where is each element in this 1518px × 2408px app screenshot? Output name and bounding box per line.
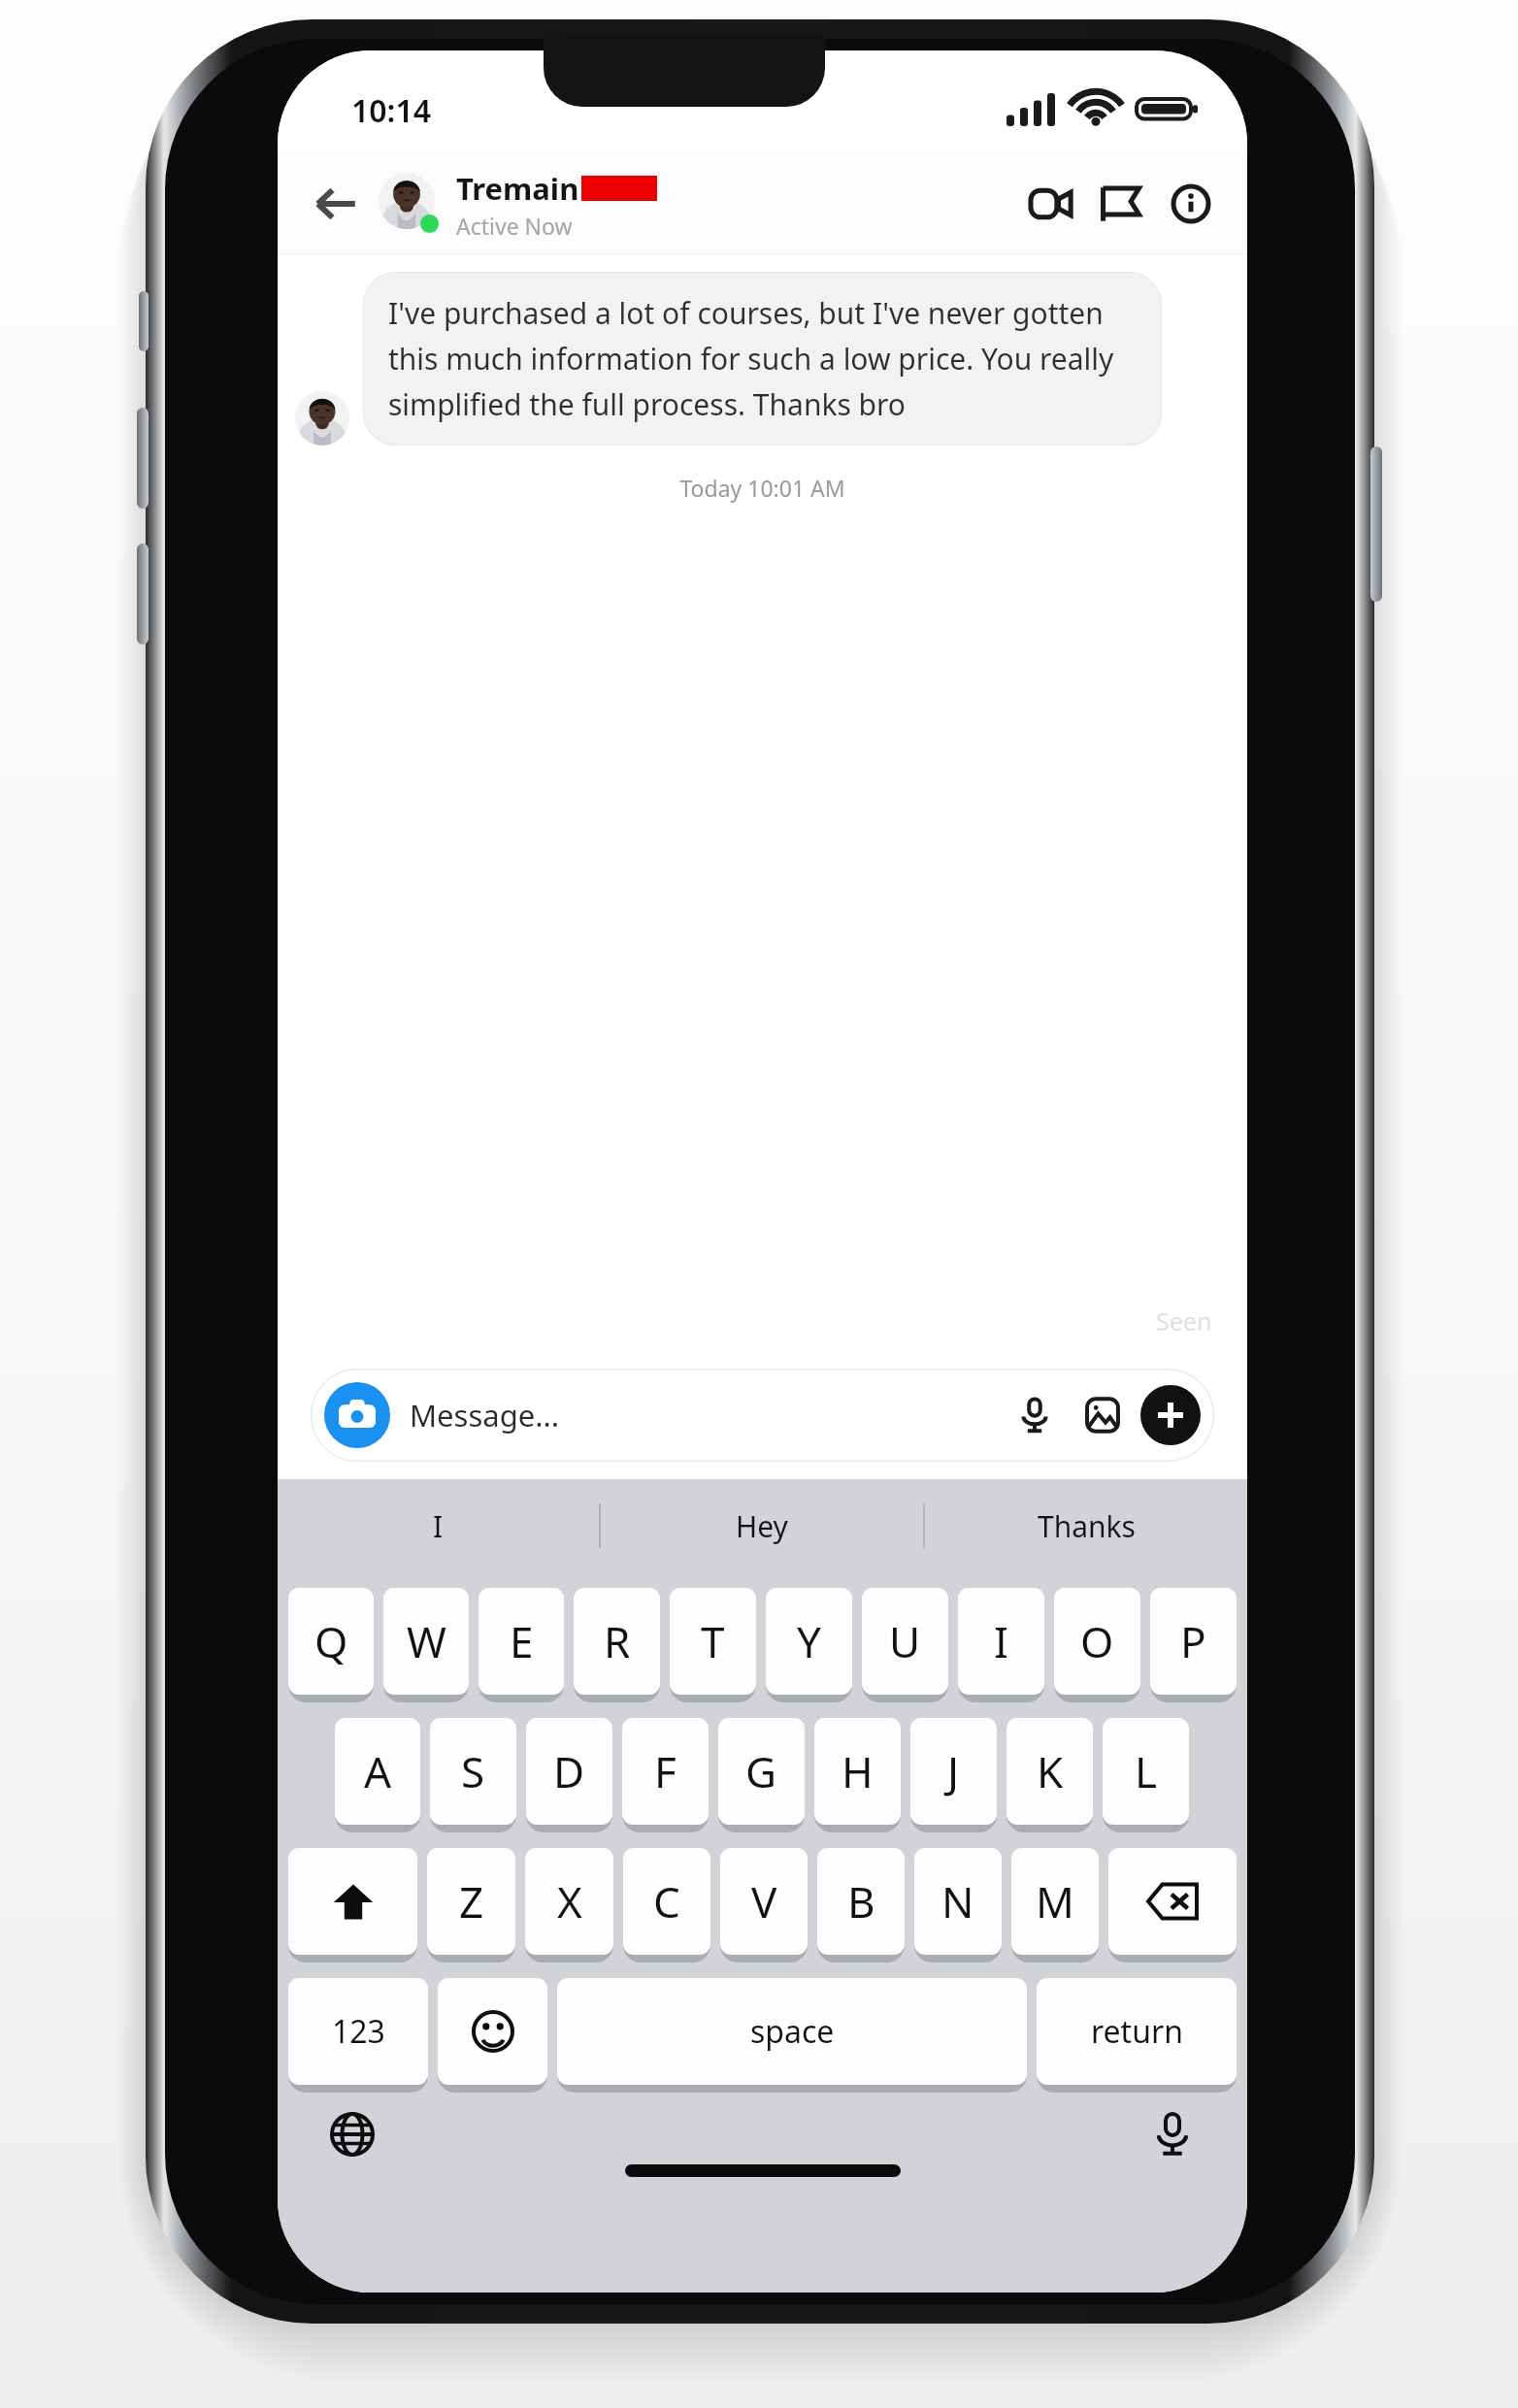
button[interactable]: Emoji	[438, 1978, 547, 2085]
button[interactable]: I	[278, 1479, 599, 1572]
staticText: 123	[332, 2010, 385, 2053]
button[interactable]: Z	[427, 1848, 515, 1955]
button[interactable]: Flag	[1086, 169, 1156, 239]
button[interactable]: Voice message	[1005, 1385, 1065, 1445]
staticText: I	[994, 1612, 1008, 1670]
staticText: V	[751, 1872, 777, 1930]
button[interactable]: T	[670, 1588, 756, 1695]
staticText: A	[364, 1742, 392, 1800]
staticText: D	[553, 1742, 585, 1800]
button[interactable]: Q	[288, 1588, 374, 1695]
button[interactable]: M	[1011, 1848, 1099, 1955]
button[interactable]: G	[718, 1718, 805, 1825]
staticText: L	[1135, 1742, 1158, 1800]
staticText: return	[1091, 2010, 1183, 2053]
staticText: U	[889, 1612, 921, 1670]
button[interactable]: N	[914, 1848, 1002, 1955]
staticText: I've purchased a lot of courses, but I'v…	[388, 293, 1137, 424]
button[interactable]: R	[574, 1588, 660, 1695]
button[interactable]: Back	[299, 167, 373, 241]
staticText: R	[604, 1612, 631, 1670]
staticText: J	[947, 1742, 960, 1800]
staticText: Hey	[736, 1506, 788, 1546]
button[interactable]: C	[623, 1848, 710, 1955]
button[interactable]: Camera	[311, 1369, 1214, 1462]
button[interactable]: More options	[1140, 1385, 1201, 1445]
button[interactable]: E	[478, 1588, 564, 1695]
button[interactable]: Change language	[322, 2104, 382, 2164]
staticText: Q	[314, 1612, 348, 1670]
button[interactable]: Dictation	[1142, 2104, 1203, 2164]
staticText: G	[745, 1742, 777, 1800]
button[interactable]: U	[862, 1588, 948, 1695]
button[interactable]: 123	[288, 1978, 428, 2085]
staticText: Thanks	[1038, 1506, 1136, 1546]
button[interactable]: space	[557, 1978, 1027, 2085]
staticText: Seen	[1156, 1304, 1212, 1337]
button[interactable]: H	[814, 1718, 901, 1825]
staticText: Z	[459, 1872, 484, 1930]
button[interactable]: K	[1006, 1718, 1093, 1825]
button[interactable]: O	[1054, 1588, 1140, 1695]
staticText: Active Now	[456, 211, 573, 241]
button[interactable]: Gallery	[1072, 1385, 1133, 1445]
button[interactable]: Camera	[324, 1382, 390, 1448]
staticText: O	[1080, 1612, 1114, 1670]
staticText: S	[461, 1742, 485, 1800]
staticText: Message...	[410, 1395, 1005, 1435]
button[interactable]: Hey	[601, 1479, 923, 1572]
staticText: I	[433, 1506, 444, 1546]
staticText: W	[407, 1612, 446, 1670]
staticText: Tremain	[456, 168, 579, 209]
button[interactable]: return	[1037, 1978, 1237, 2085]
button[interactable]: Info	[1156, 169, 1226, 239]
button[interactable]: Backspace	[1108, 1848, 1237, 1955]
button[interactable]: I've purchased a lot of courses, but I'v…	[363, 272, 1162, 445]
button[interactable]: I	[958, 1588, 1044, 1695]
staticText: F	[654, 1742, 676, 1800]
button[interactable]: X	[525, 1848, 613, 1955]
button[interactable]: F	[622, 1718, 709, 1825]
button[interactable]: W	[383, 1588, 469, 1695]
button[interactable]: D	[526, 1718, 612, 1825]
staticText: E	[510, 1612, 534, 1670]
button[interactable]: J	[910, 1718, 997, 1825]
button[interactable]: S	[430, 1718, 516, 1825]
staticText: K	[1037, 1742, 1064, 1800]
staticText: B	[847, 1872, 875, 1930]
button[interactable]: Y	[766, 1588, 852, 1695]
button[interactable]: A	[335, 1718, 420, 1825]
staticText: space	[750, 2010, 835, 2053]
button[interactable]: V	[720, 1848, 808, 1955]
button[interactable]: Video call	[1016, 169, 1086, 239]
staticText: X	[557, 1872, 582, 1930]
button[interactable]: P	[1150, 1588, 1237, 1695]
staticText: H	[841, 1742, 874, 1800]
button[interactable]: Shift	[288, 1848, 417, 1955]
staticText: P	[1180, 1612, 1206, 1670]
staticText: T	[701, 1612, 725, 1670]
staticText: C	[653, 1872, 680, 1930]
button[interactable]: Thanks	[925, 1479, 1247, 1572]
button[interactable]: Profile	[379, 173, 441, 235]
staticText: 10:14	[351, 89, 432, 132]
staticText: M	[1036, 1872, 1074, 1930]
button[interactable]: L	[1103, 1718, 1189, 1825]
staticText: Today 10:01 AM	[278, 473, 1247, 503]
button[interactable]: B	[817, 1848, 905, 1955]
staticText: Y	[797, 1612, 821, 1670]
staticText: N	[941, 1872, 974, 1930]
